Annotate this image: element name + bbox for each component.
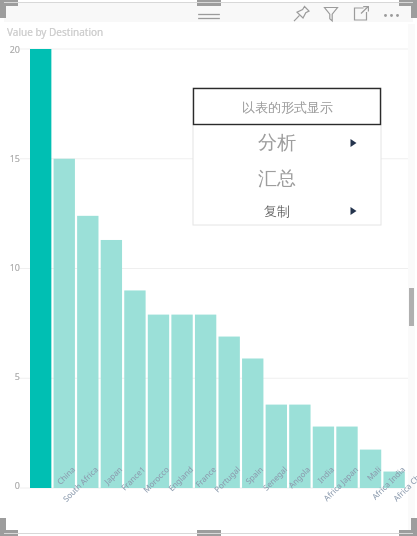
- staticText: South Africa: [36, 464, 102, 530]
- button[interactable]: Focus mode: [350, 3, 372, 25]
- button[interactable]: 以表的形式显示: [193, 88, 381, 125]
- button[interactable]: Menu: [192, 6, 226, 22]
- staticText: Morocco: [107, 464, 173, 530]
- button[interactable]: Filter: [320, 3, 342, 25]
- staticText: India: [272, 464, 338, 530]
- staticText: 汇总: [258, 167, 296, 191]
- staticText: 15: [9, 152, 20, 164]
- staticText: Japan: [60, 464, 126, 530]
- staticText: 复制: [264, 203, 290, 219]
- staticText: Value by Destination: [7, 25, 104, 39]
- staticText: 5: [14, 370, 20, 382]
- staticText: Senegal: [225, 464, 291, 530]
- staticText: 20: [9, 43, 20, 55]
- staticText: 分析: [258, 131, 296, 155]
- staticText: France1: [83, 464, 149, 530]
- staticText: 0: [14, 479, 20, 491]
- button[interactable]: More options: [380, 3, 406, 25]
- staticText: 以表的形式显示: [242, 99, 333, 115]
- button[interactable]: 分析: [193, 125, 381, 161]
- staticText: Africa India: [343, 464, 409, 530]
- staticText: China: [13, 464, 79, 530]
- staticText: Spain: [201, 464, 267, 530]
- staticText: 10: [9, 261, 20, 273]
- staticText: Mali: [319, 464, 385, 530]
- staticText: Angola: [248, 464, 314, 530]
- staticText: Portugal: [178, 464, 244, 530]
- staticText: England: [131, 464, 197, 530]
- button[interactable]: 复制: [193, 197, 381, 225]
- staticText: France: [154, 464, 220, 530]
- button[interactable]: 汇总: [193, 161, 381, 197]
- staticText: Africa Japan: [296, 464, 362, 530]
- button[interactable]: Pin: [290, 3, 312, 25]
- staticText: Africa China: [366, 464, 417, 530]
